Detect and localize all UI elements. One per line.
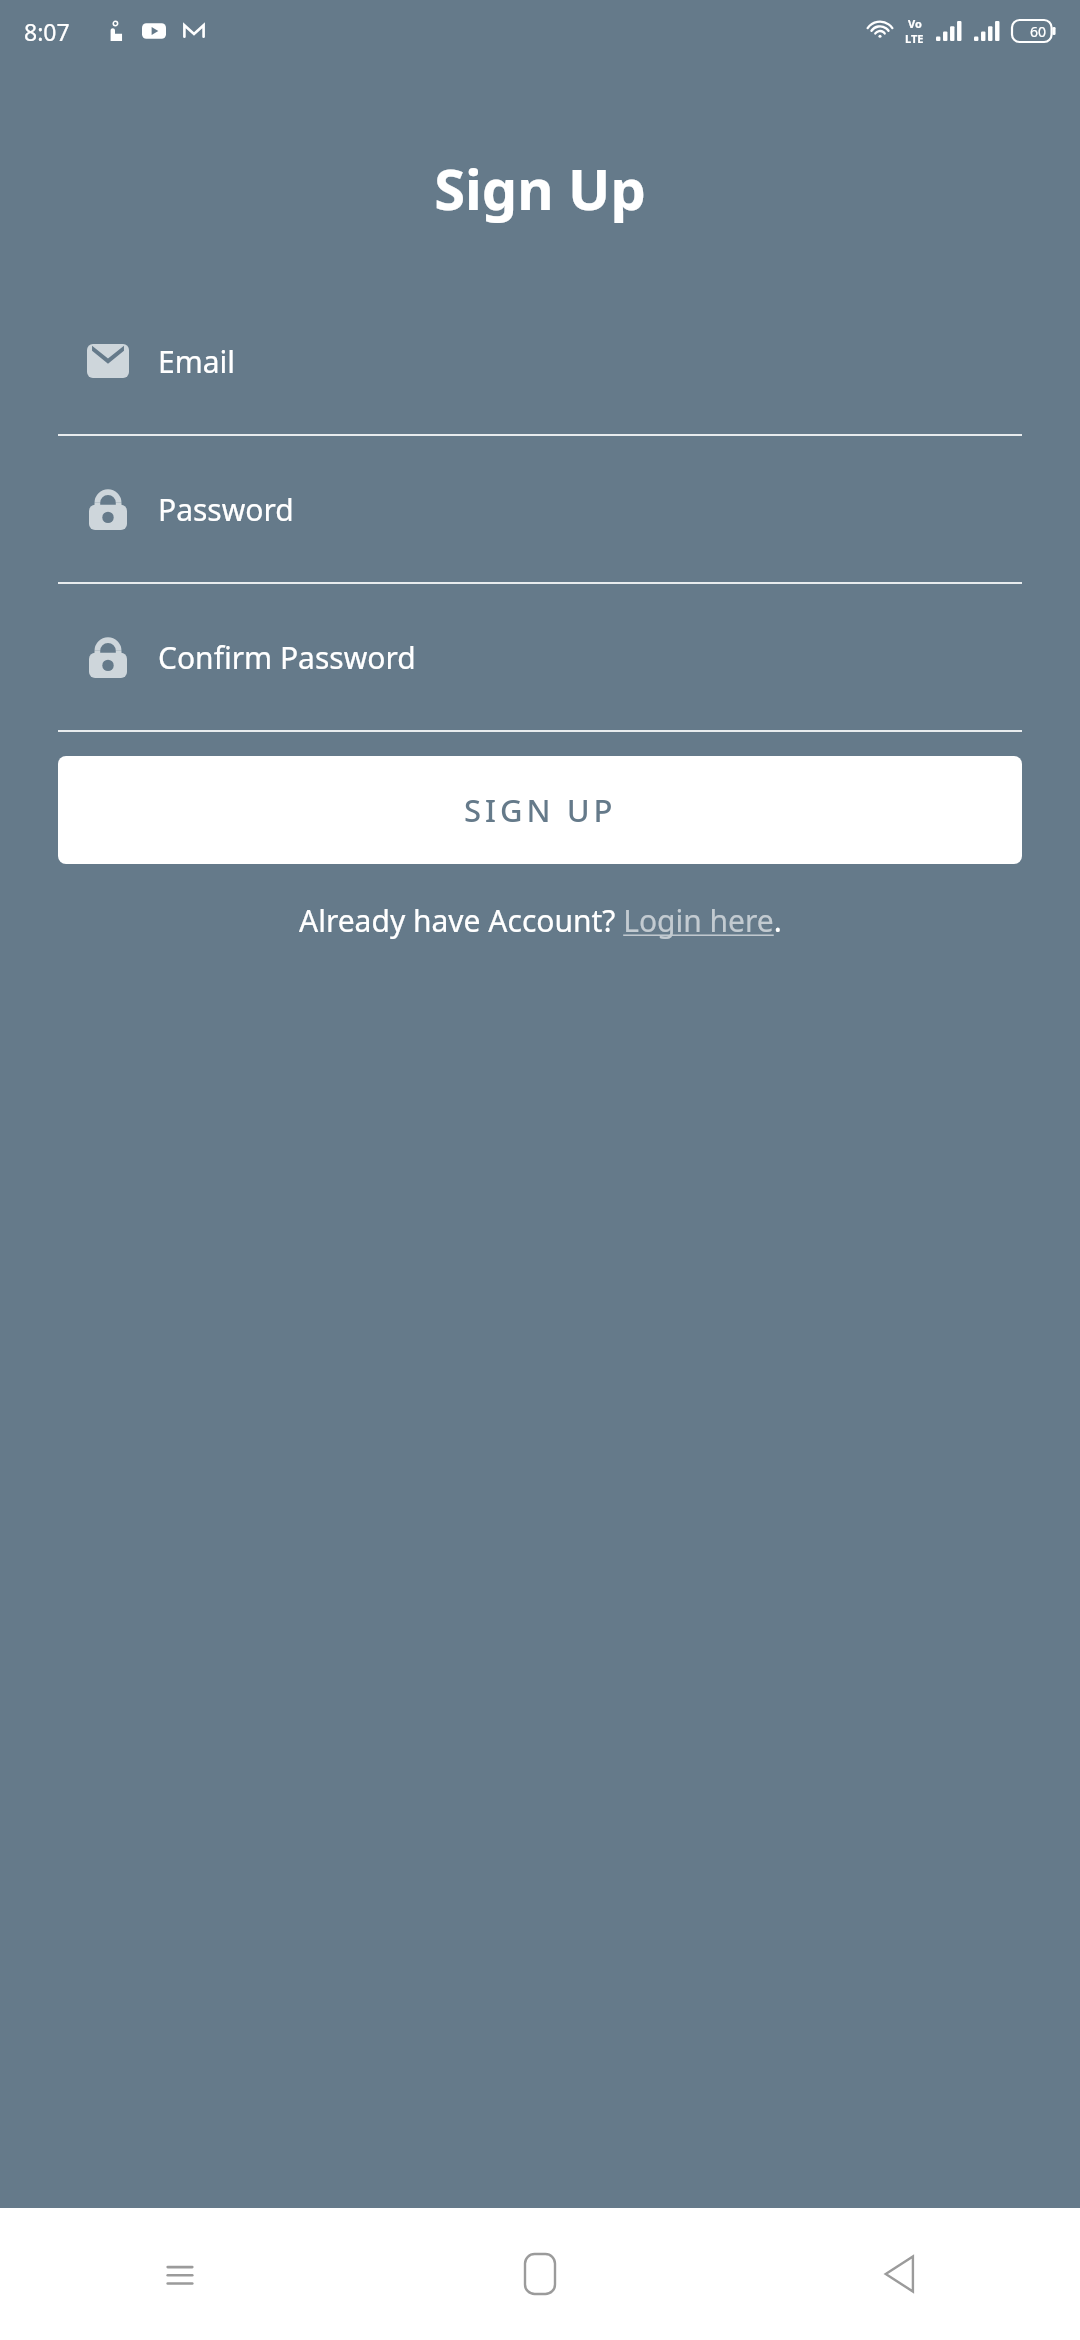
- staticText: Email: [158, 341, 236, 382]
- button[interactable]: SIGN UP: [58, 756, 1022, 864]
- staticText: Sign Up: [0, 150, 1080, 226]
- staticText: Confirm Password: [158, 637, 416, 678]
- staticText: SIGN UP: [464, 789, 617, 831]
- button[interactable]: Recent apps: [0, 2208, 360, 2340]
- button[interactable]: Home: [360, 2208, 720, 2340]
- staticText: 8:07: [24, 16, 70, 47]
- button[interactable]: Confirm Password: [0, 584, 1080, 732]
- staticText: Password: [158, 489, 294, 530]
- staticText: Vo: [908, 16, 922, 31]
- staticText: Already have Account? Login here.: [299, 900, 782, 941]
- staticText: 60: [1030, 22, 1047, 41]
- button[interactable]: Email: [0, 288, 1080, 436]
- button[interactable]: Back: [720, 2208, 1080, 2340]
- staticText: LTE: [905, 31, 924, 46]
- button[interactable]: Already have Account? Login here.: [291, 894, 790, 947]
- button[interactable]: Password: [0, 436, 1080, 584]
